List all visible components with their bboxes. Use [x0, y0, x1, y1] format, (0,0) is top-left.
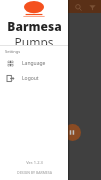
button[interactable]: Logout [0, 73, 68, 83]
staticText: Settings [5, 49, 21, 54]
staticText: Barmesa [7, 18, 62, 34]
button[interactable]: Filter [86, 1, 98, 13]
staticText: Logout [22, 75, 39, 82]
staticText: Pumps [14, 34, 54, 45]
staticText: DESIGN BY BARMESA [17, 170, 52, 175]
staticText: Ver. 1.2.3 [26, 160, 43, 165]
button[interactable]: Search [72, 1, 84, 13]
button[interactable]: Add [64, 124, 81, 141]
button[interactable]: Language [0, 58, 68, 68]
staticText: Language [22, 60, 46, 67]
